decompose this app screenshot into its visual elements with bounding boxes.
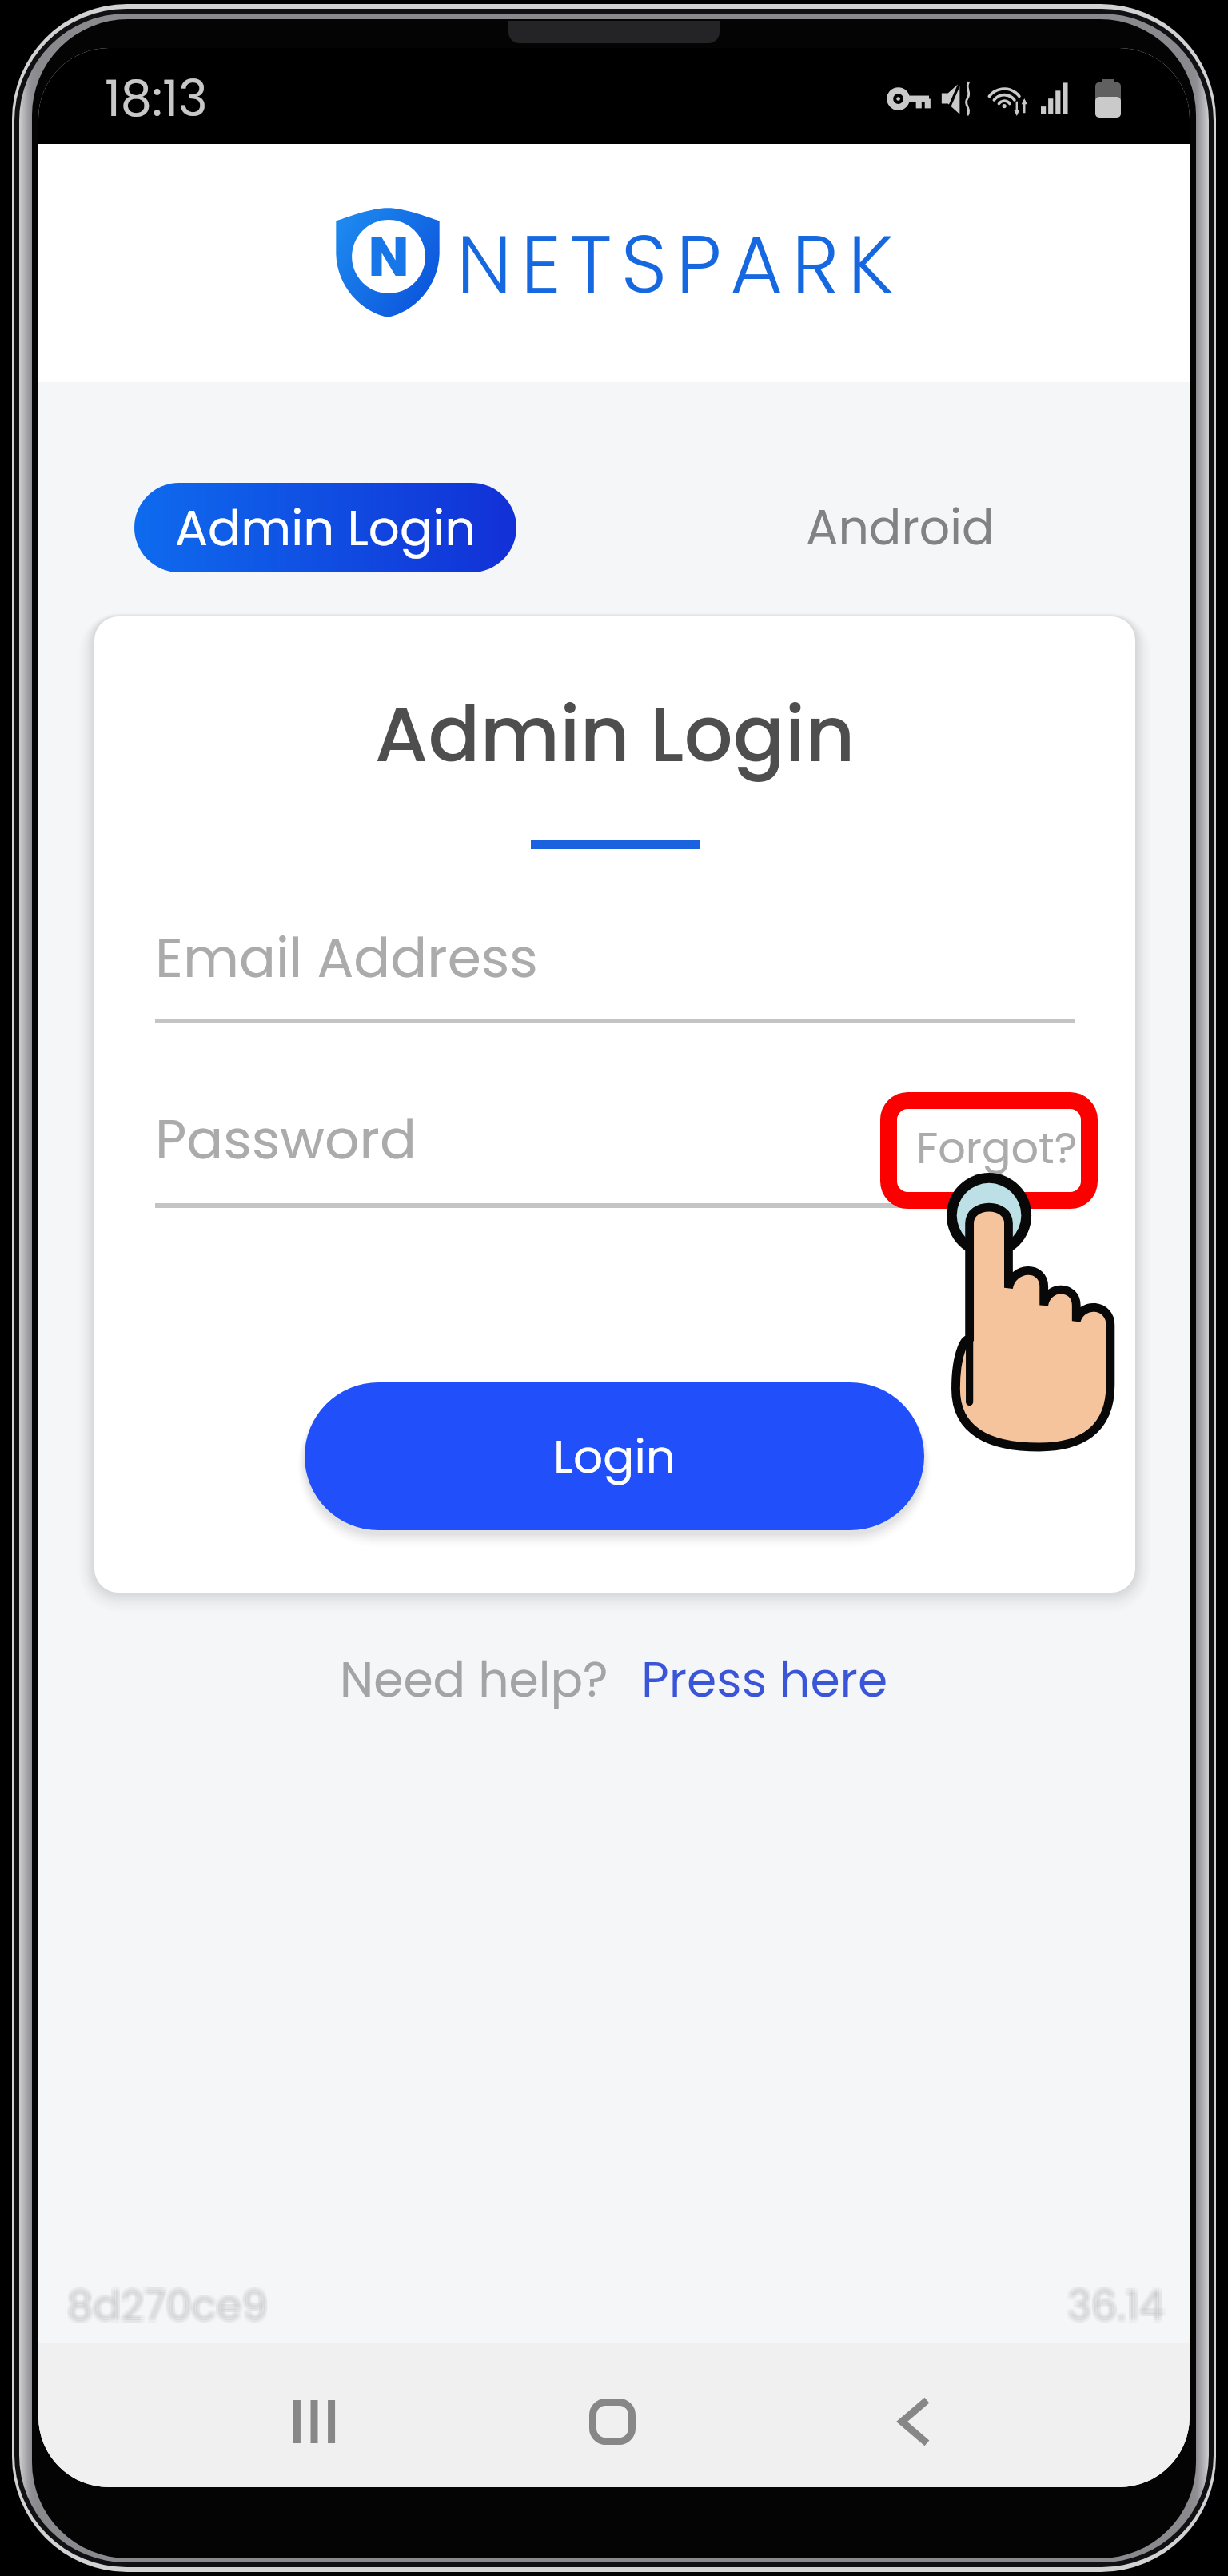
staticText: Android bbox=[806, 494, 995, 561]
staticText: 36.14 bbox=[1070, 2279, 1167, 2336]
staticText: 8d270ce9 bbox=[70, 2279, 270, 2336]
button[interactable]: Android bbox=[732, 483, 1068, 572]
staticText: 18:13 bbox=[105, 64, 208, 134]
staticText: 36.14 bbox=[1067, 2277, 1165, 2334]
staticText: 36.14 bbox=[1070, 2277, 1167, 2334]
staticText: 8d270ce9 bbox=[65, 2275, 265, 2331]
staticText: 8d270ce9 bbox=[65, 2279, 265, 2336]
staticText: 36.14 bbox=[1065, 2277, 1162, 2334]
staticText: 8d270ce9 bbox=[67, 2279, 268, 2336]
button[interactable]: Forgot? bbox=[880, 1092, 1098, 1209]
staticText: Need help? bbox=[340, 1646, 608, 1713]
staticText: Press here bbox=[641, 1646, 888, 1713]
staticText: 8d270ce9 bbox=[67, 2277, 268, 2334]
staticText: Admin Login bbox=[94, 680, 1135, 788]
button[interactable]: Admin Login bbox=[134, 483, 516, 572]
staticText: Admin Login bbox=[175, 494, 476, 562]
staticText: Password bbox=[155, 1102, 417, 1178]
staticText: Login bbox=[553, 1424, 676, 1489]
staticText: 8d270ce9 bbox=[67, 2275, 268, 2331]
staticText: 36.14 bbox=[1070, 2275, 1167, 2331]
staticText: Email Address bbox=[155, 920, 538, 996]
staticText: 36.14 bbox=[1067, 2275, 1165, 2331]
staticText: 36.14 bbox=[1067, 2279, 1165, 2336]
button[interactable]: Press here bbox=[641, 1646, 888, 1713]
button[interactable]: Login bbox=[305, 1382, 924, 1530]
staticText: NETSPARK bbox=[457, 208, 903, 321]
button[interactable]: Recent apps bbox=[242, 2374, 386, 2470]
button[interactable]: Home bbox=[540, 2374, 684, 2470]
staticText: 8d270ce9 bbox=[70, 2275, 270, 2331]
staticText: 8d270ce9 bbox=[65, 2277, 265, 2334]
staticText: 36.14 bbox=[1065, 2279, 1162, 2336]
staticText: Forgot? bbox=[916, 1118, 1077, 1178]
button[interactable]: Back bbox=[841, 2374, 985, 2470]
staticText: 36.14 bbox=[1065, 2275, 1162, 2331]
staticText: 8d270ce9 bbox=[70, 2277, 270, 2334]
